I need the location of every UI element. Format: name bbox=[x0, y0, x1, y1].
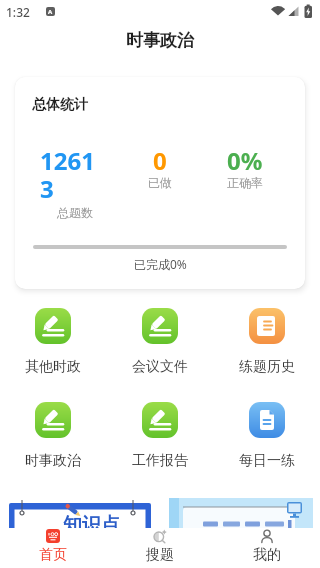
staticText: 练题历史 bbox=[239, 358, 295, 376]
staticText: 0 bbox=[153, 144, 167, 177]
button[interactable]: 知识点 bbox=[6, 498, 158, 528]
button[interactable]: 我的 bbox=[237, 528, 297, 564]
staticText: 其他时政 bbox=[25, 358, 81, 376]
staticText: 1:32 bbox=[6, 4, 30, 20]
staticText: 工作报告 bbox=[132, 452, 188, 470]
staticText: A bbox=[48, 8, 53, 16]
staticText: 总体统计 bbox=[32, 96, 88, 114]
button[interactable]: 总体统计 bbox=[15, 77, 305, 289]
staticText: 每日一练 bbox=[239, 452, 295, 470]
button[interactable]: 其他时政 bbox=[0, 308, 106, 376]
staticText: 正确率 bbox=[227, 175, 263, 190]
staticText: 0% bbox=[227, 144, 263, 177]
button[interactable]: 工作报告 bbox=[107, 402, 213, 470]
staticText: 知识点 bbox=[63, 513, 120, 537]
staticText: 会议文件 bbox=[132, 358, 188, 376]
button[interactable] bbox=[169, 498, 313, 528]
button[interactable]: 首页 bbox=[23, 528, 83, 564]
button[interactable]: 练题历史 bbox=[214, 308, 320, 376]
staticText: 1261 3 bbox=[40, 144, 95, 205]
staticText: 总题数 bbox=[57, 205, 93, 220]
staticText: 时事政治 bbox=[126, 30, 194, 51]
staticText: 已做 bbox=[148, 175, 172, 190]
staticText: 搜题 bbox=[146, 546, 174, 564]
staticText: 已完成0% bbox=[134, 256, 187, 272]
button[interactable]: 每日一练 bbox=[214, 402, 320, 470]
button[interactable]: 时事政治 bbox=[0, 402, 106, 470]
staticText: 我的 bbox=[253, 546, 281, 564]
staticText: 首页 bbox=[39, 546, 67, 564]
button[interactable]: 搜题 bbox=[130, 528, 190, 564]
staticText: 时事政治 bbox=[25, 452, 81, 470]
button[interactable]: 会议文件 bbox=[107, 308, 213, 376]
